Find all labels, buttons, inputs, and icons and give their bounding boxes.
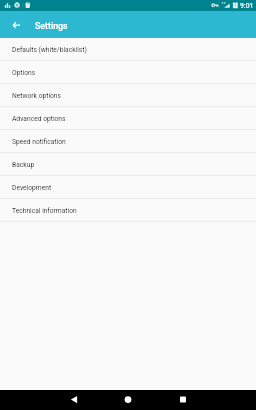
- staticText: Options: [12, 69, 36, 77]
- staticText: Development: [12, 184, 52, 192]
- staticText: Defaults (white/blacklist): [12, 46, 87, 54]
- button[interactable]: Back: [8, 17, 24, 33]
- button[interactable]: Home: [113, 390, 143, 410]
- staticText: Network options: [12, 92, 62, 100]
- button[interactable]: Advanced options: [0, 107, 256, 130]
- staticText: 9:01: [240, 2, 254, 10]
- staticText: Backup: [12, 161, 35, 169]
- staticText: Technical information: [12, 207, 77, 215]
- button[interactable]: Technical information: [0, 199, 256, 222]
- button[interactable]: Speed notification: [0, 130, 256, 153]
- button[interactable]: Back: [59, 390, 89, 410]
- button[interactable]: Defaults (white/blacklist): [0, 38, 256, 61]
- staticText: Advanced options: [12, 115, 66, 123]
- staticText: Speed notification: [12, 138, 66, 146]
- button[interactable]: Development: [0, 176, 256, 199]
- button[interactable]: Recent apps: [168, 390, 198, 410]
- button[interactable]: Options: [0, 61, 256, 84]
- button[interactable]: Backup: [0, 153, 256, 176]
- button[interactable]: Network options: [0, 84, 256, 107]
- staticText: Settings: [35, 21, 68, 31]
